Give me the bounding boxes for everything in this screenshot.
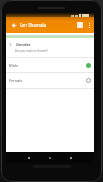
button[interactable]: Male — [6, 58, 94, 72]
button[interactable] — [68, 155, 74, 161]
staticText: Gender — [16, 42, 31, 47]
button[interactable] — [77, 22, 83, 28]
staticText: Are you male or female? — [15, 49, 48, 53]
button[interactable]: Female — [6, 73, 94, 88]
staticText: Female — [9, 78, 23, 83]
button[interactable] — [89, 23, 90, 28]
staticText: 1. — [9, 42, 13, 47]
staticText: Male — [9, 63, 19, 68]
button[interactable] — [47, 155, 53, 161]
staticText: Ian Shamala — [20, 22, 47, 28]
button[interactable] — [26, 155, 32, 161]
button[interactable] — [12, 23, 17, 28]
